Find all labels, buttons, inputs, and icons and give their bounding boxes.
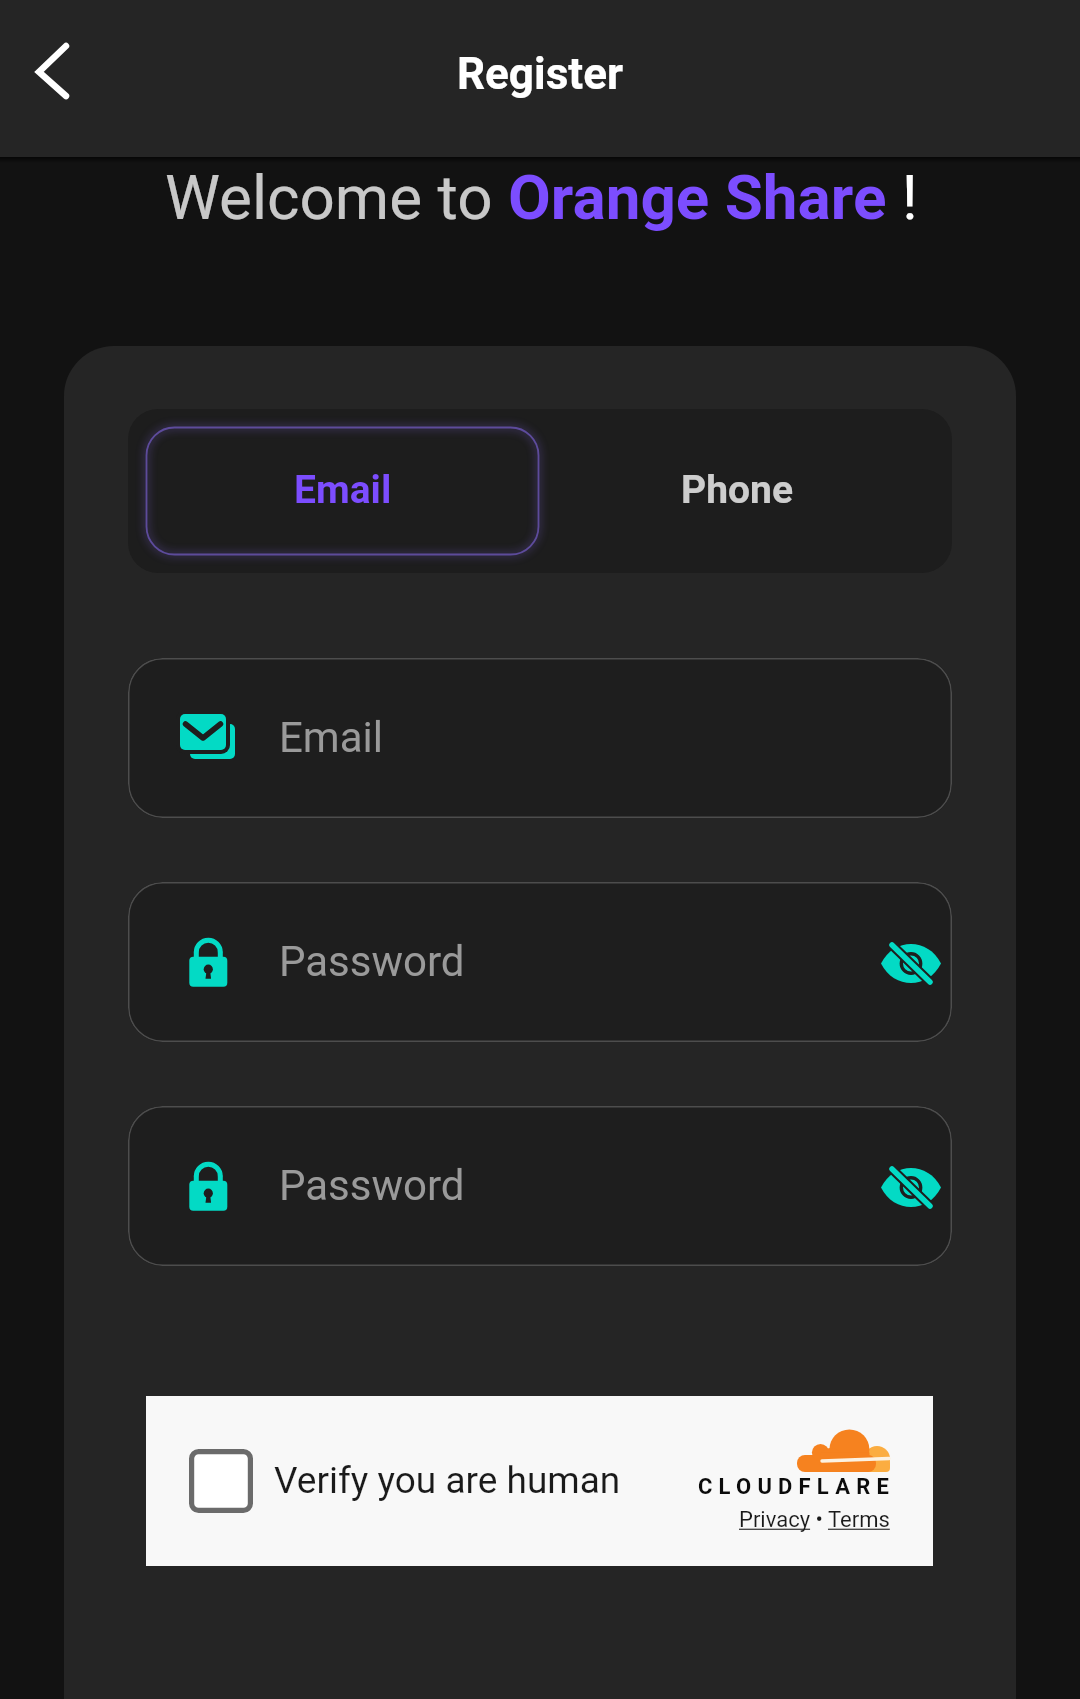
staticText: Welcome to Orange Share !	[165, 161, 918, 234]
staticText: Password	[279, 1161, 465, 1210]
button[interactable]: Email	[128, 658, 952, 818]
staticText: Phone	[681, 467, 793, 513]
button[interactable]: Phone	[541, 425, 938, 557]
button[interactable]: Verify you are human	[189, 1449, 253, 1513]
staticText: Password	[279, 937, 465, 986]
staticText: Email	[279, 713, 383, 762]
staticText: Register	[457, 48, 624, 100]
button[interactable]: Email	[144, 425, 541, 557]
button[interactable]: Show password	[128, 1106, 952, 1266]
button[interactable]: Back	[6, 21, 106, 121]
button[interactable]: Show password	[843, 1142, 939, 1238]
button[interactable]: Show password	[843, 918, 939, 1014]
staticText: Verify you are human	[274, 1459, 621, 1502]
button[interactable]: Privacy • Terms	[739, 1507, 890, 1533]
staticText: Email	[294, 467, 392, 513]
staticText: CLOUDFLARE	[698, 1474, 896, 1500]
button[interactable]: Show password	[128, 882, 952, 1042]
